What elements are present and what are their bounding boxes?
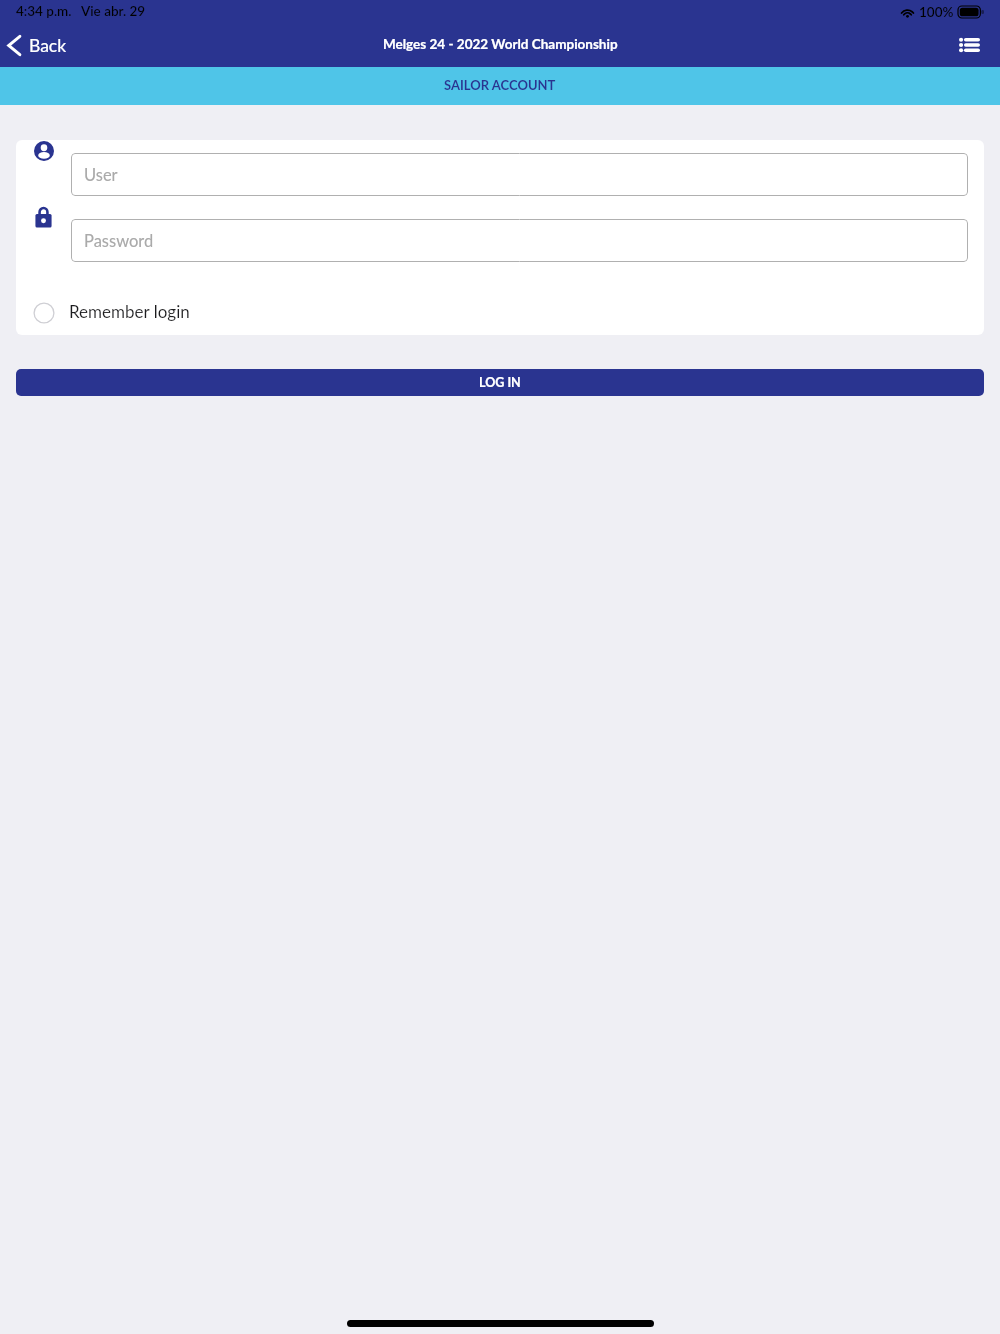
button[interactable]: Remember login — [16, 302, 984, 324]
button[interactable]: Back — [0, 30, 77, 61]
staticText: Back — [29, 35, 67, 56]
staticText: LOG IN — [479, 375, 521, 390]
staticText: 100% — [919, 4, 954, 20]
button[interactable]: User — [71, 153, 968, 196]
staticText: User — [84, 165, 118, 185]
staticText: SAILOR ACCOUNT — [444, 77, 556, 93]
button[interactable]: Password — [71, 219, 968, 262]
staticText: 4:34 p.m. — [16, 3, 72, 19]
staticText: Vie abr. 29 — [81, 3, 146, 19]
button[interactable]: Menu — [945, 29, 1000, 61]
staticText: Password — [84, 231, 154, 251]
staticText: Remember login — [69, 301, 190, 321]
staticText: Melges 24 - 2022 World Championship — [383, 36, 618, 52]
button[interactable]: LOG IN — [16, 369, 984, 396]
